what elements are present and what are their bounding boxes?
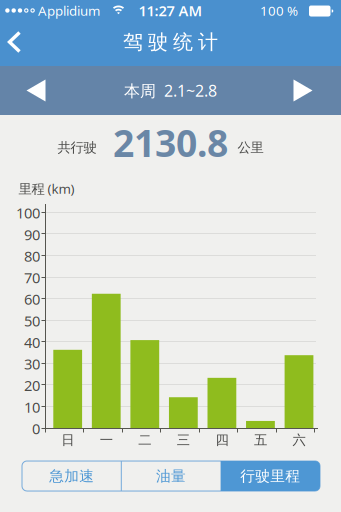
staticText: 本周 2.1~2.8 xyxy=(124,80,217,101)
staticText: 四 xyxy=(215,432,228,448)
staticText: 日 xyxy=(61,432,74,448)
staticText: 50 xyxy=(24,311,40,330)
staticText: 共行驶 xyxy=(57,139,96,156)
staticText: 100 xyxy=(16,203,40,223)
staticText: 驾驶统计 xyxy=(123,30,218,54)
staticText: Applidium xyxy=(38,2,100,19)
staticText: 20 xyxy=(24,376,40,395)
staticText: 40 xyxy=(24,332,40,352)
button[interactable]: Previous week xyxy=(0,66,70,115)
staticText: 30 xyxy=(24,354,40,374)
button[interactable]: 油量 xyxy=(121,461,220,491)
staticText: 六 xyxy=(292,432,305,448)
staticText: 10 xyxy=(24,397,40,417)
staticText: 60 xyxy=(24,289,40,309)
staticText: 一 xyxy=(100,432,113,448)
staticText: 70 xyxy=(24,268,40,287)
button[interactable]: Next week xyxy=(271,66,341,115)
staticText: 0 xyxy=(32,419,40,438)
staticText: 油量 xyxy=(156,467,186,485)
staticText: 急加速 xyxy=(49,467,94,485)
button[interactable]: 急加速 xyxy=(22,461,121,491)
staticText: 五 xyxy=(254,432,267,448)
button[interactable]: 行驶里程 xyxy=(221,461,320,491)
staticText: 80 xyxy=(24,246,40,266)
staticText: 行驶里程 xyxy=(240,467,300,485)
staticText: 2130.8 xyxy=(113,118,228,167)
staticText: 公里 xyxy=(237,139,263,156)
staticText: 三 xyxy=(177,432,190,448)
staticText: 里程 (km) xyxy=(18,180,74,197)
staticText: 11:27 AM xyxy=(138,1,202,20)
staticText: 100 % xyxy=(260,2,298,19)
button[interactable]: Back xyxy=(0,0,40,65)
staticText: 90 xyxy=(24,225,40,244)
staticText: 二 xyxy=(138,432,151,448)
